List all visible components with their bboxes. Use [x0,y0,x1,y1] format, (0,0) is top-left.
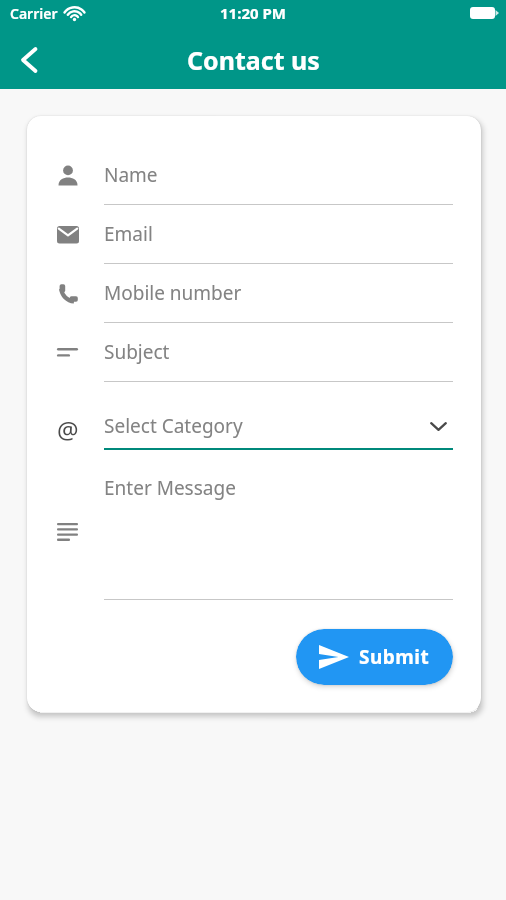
staticText: Mobile number [104,280,242,306]
button[interactable]: @ [57,382,453,450]
staticText: Subject [104,339,170,365]
staticText: Name [104,162,158,188]
button[interactable]: Mobile number [57,264,453,323]
button[interactable]: Name [57,146,453,205]
staticText: @ [57,413,79,446]
staticText: Enter Message [104,475,236,501]
staticText: Contact us [187,43,320,77]
staticText: 11:20 PM [220,3,286,23]
button[interactable]: Subject [57,323,453,382]
staticText: Select Category [104,413,243,439]
button[interactable]: Submit [296,629,453,685]
button[interactable]: Email [57,205,453,264]
staticText: Carrier [10,4,58,23]
staticText: Submit [359,644,430,670]
button[interactable] [8,39,50,81]
staticText: Email [104,221,153,247]
